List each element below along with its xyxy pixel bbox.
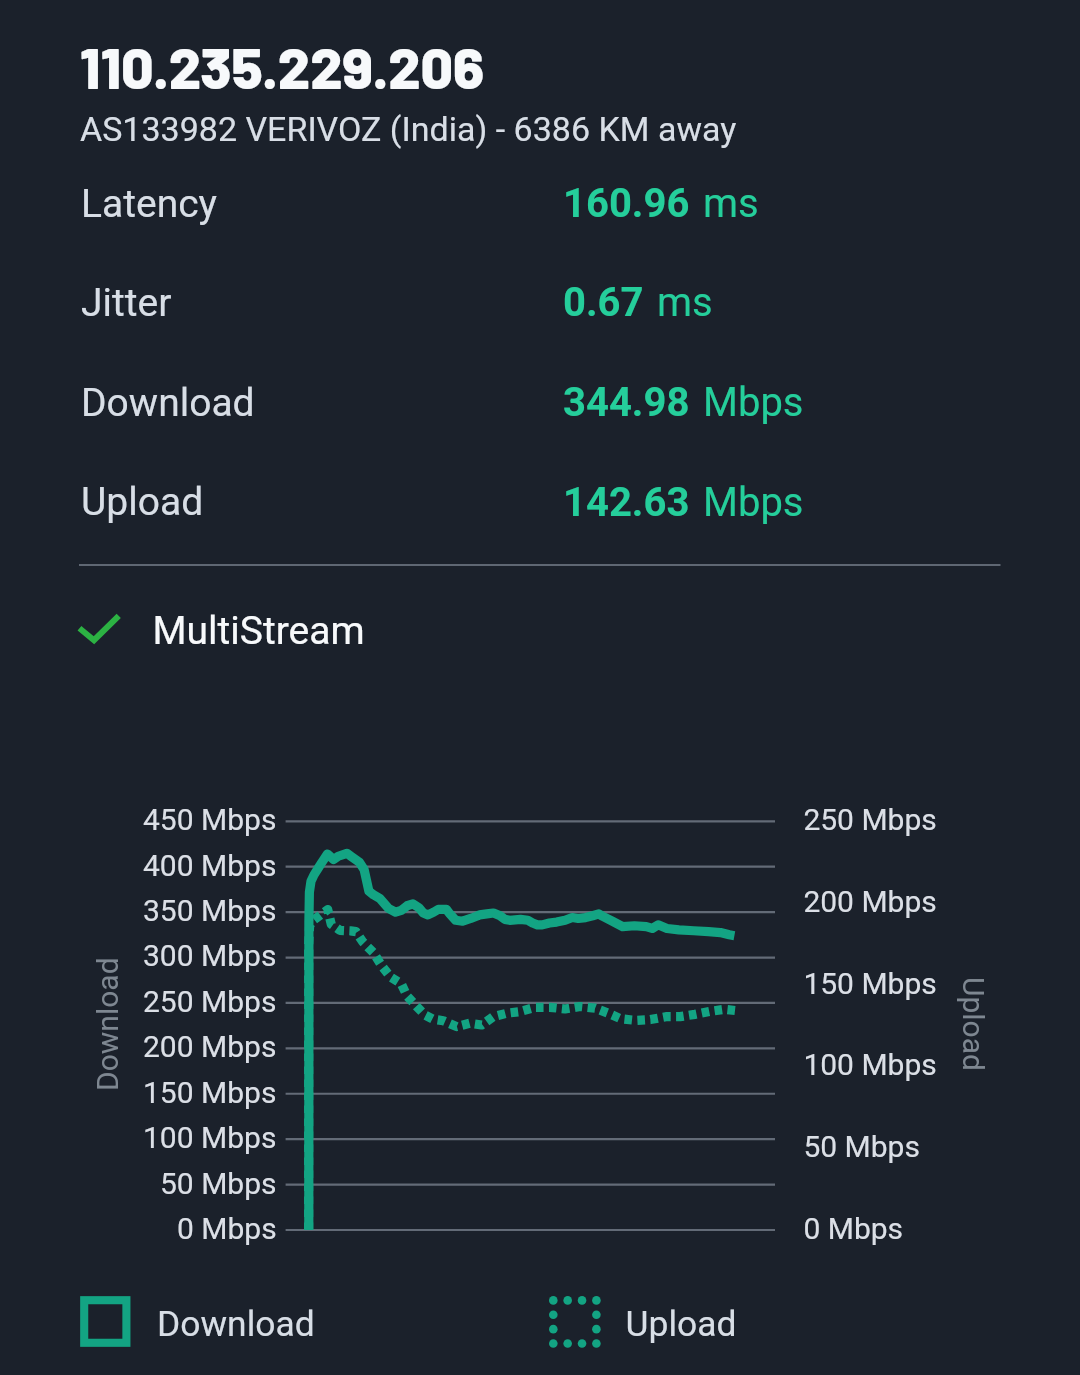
button[interactable]: 110.235.229.206 AS133982 VERIVOZ (India)… <box>0 0 1080 1375</box>
button[interactable]: Download 344.98 Mbps <box>79 368 1004 468</box>
button[interactable]: Latency 160.96 ms <box>79 168 1004 268</box>
button[interactable]: Download series <box>80 1292 315 1354</box>
button[interactable]: Download and upload speed chart <box>80 790 1000 1250</box>
button[interactable]: MultiStream enabled <box>76 600 366 662</box>
button[interactable]: Jitter 0.67 ms <box>79 268 1004 368</box>
button[interactable]: 110.235.229.206 AS133982 VERIVOZ (India)… <box>80 36 760 98</box>
button[interactable]: Upload 142.63 Mbps <box>79 468 1004 568</box>
button[interactable]: Upload series <box>549 1292 735 1354</box>
